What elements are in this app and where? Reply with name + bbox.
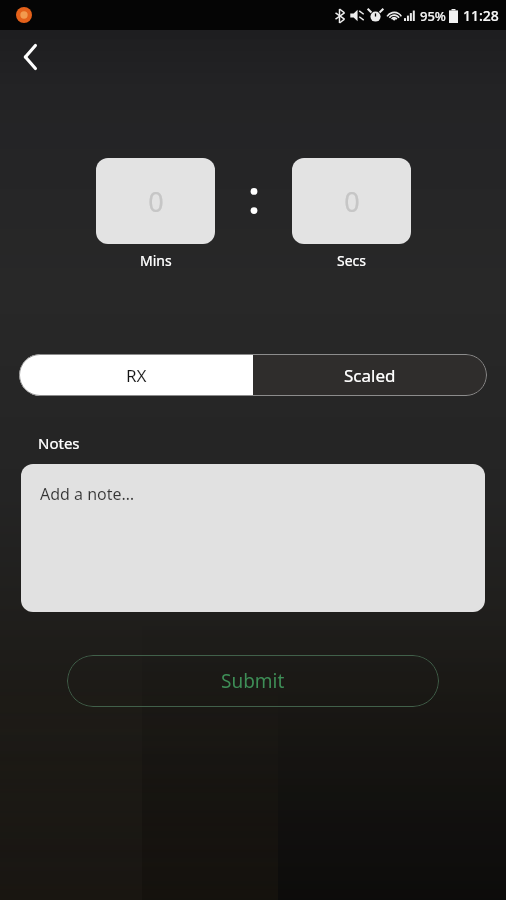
staticText: 0 <box>344 183 360 220</box>
staticText: Add a note… <box>40 483 135 505</box>
staticText: 11:28 <box>463 6 499 25</box>
button[interactable]: RX <box>19 354 253 396</box>
button[interactable]: 0 <box>96 158 215 244</box>
staticText: Submit <box>221 668 285 694</box>
staticText: Secs <box>337 251 367 270</box>
staticText: 95% <box>420 7 446 25</box>
staticText: Mins <box>140 251 172 270</box>
button[interactable]: 0 <box>292 158 411 244</box>
staticText: 0 <box>148 183 164 220</box>
staticText: RX <box>126 364 147 387</box>
staticText: Scaled <box>344 364 396 387</box>
button[interactable]: Back <box>7 33 55 81</box>
staticText: Notes <box>38 433 80 453</box>
button[interactable]: Add a note… <box>21 464 485 612</box>
button[interactable]: Submit <box>67 655 439 707</box>
button[interactable]: Scaled <box>253 354 487 396</box>
